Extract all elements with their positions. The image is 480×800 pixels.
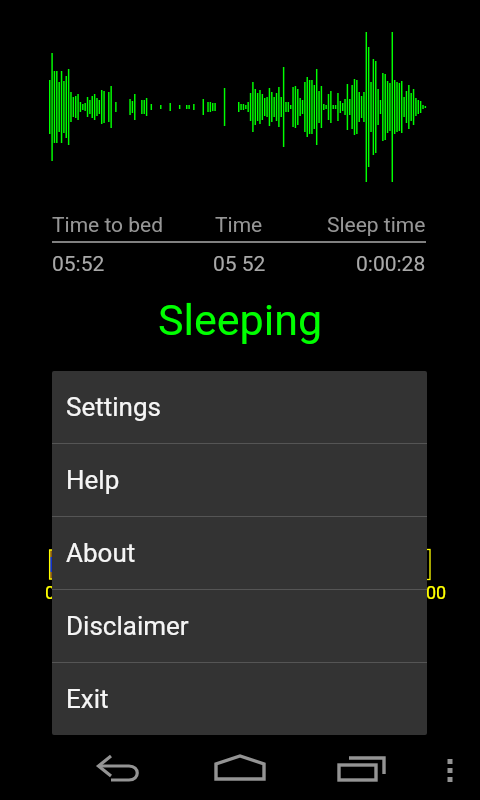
staticText: Exit — [66, 684, 109, 714]
staticText: Settings — [66, 392, 161, 422]
staticText: Disclaimer — [66, 611, 189, 641]
staticText: 0:00:28 — [356, 252, 426, 277]
button[interactable]: Settings — [52, 371, 427, 443]
staticText: 05:52 — [52, 252, 105, 277]
button[interactable]: Home — [190, 735, 290, 800]
button[interactable]: Recent apps — [310, 735, 410, 800]
button[interactable]: Disclaimer — [52, 590, 427, 662]
staticText: Sleeping — [158, 295, 323, 345]
staticText: 00 — [426, 582, 447, 603]
staticText: 05 52 — [213, 252, 266, 277]
staticText: Help — [66, 465, 120, 495]
button[interactable]: Back — [70, 735, 170, 800]
staticText: Time to bed — [52, 213, 164, 238]
button[interactable]: Exit — [52, 663, 427, 735]
button[interactable]: About — [52, 517, 427, 589]
staticText: Time — [215, 213, 263, 238]
staticText: Sleep time — [327, 213, 426, 238]
button[interactable]: Help — [52, 444, 427, 516]
staticText: 0 — [45, 582, 56, 603]
staticText: About — [66, 538, 136, 568]
button[interactable]: More options — [420, 735, 480, 800]
